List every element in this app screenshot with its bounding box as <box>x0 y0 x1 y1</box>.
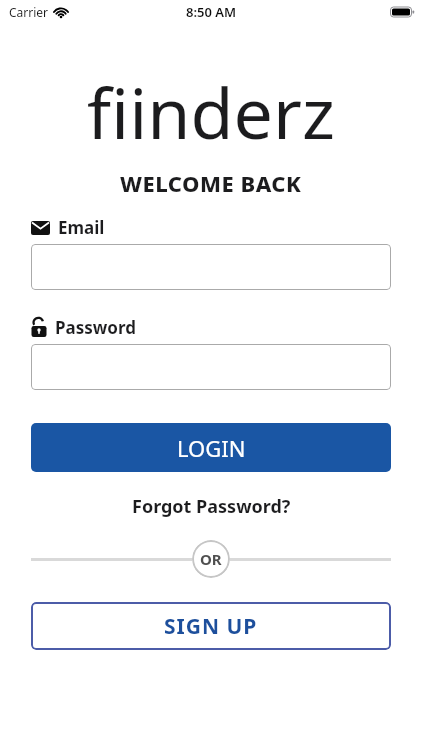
staticText: OR <box>200 549 222 569</box>
button[interactable] <box>31 344 391 390</box>
staticText: 8:50 AM <box>186 3 237 21</box>
button[interactable]: LOGIN <box>31 423 391 472</box>
staticText: Carrier <box>9 4 49 20</box>
staticText: Forgot Password? <box>132 494 291 519</box>
staticText: WELCOME BACK <box>120 168 302 198</box>
staticText: SIGN UP <box>164 612 258 641</box>
button[interactable] <box>31 244 391 290</box>
staticText: LOGIN <box>177 433 246 463</box>
staticText: Password <box>55 316 136 339</box>
staticText: fiinderz <box>87 64 335 159</box>
staticText: Email <box>58 216 105 239</box>
button[interactable]: SIGN UP <box>31 602 391 650</box>
button[interactable]: Forgot Password? <box>132 494 291 519</box>
